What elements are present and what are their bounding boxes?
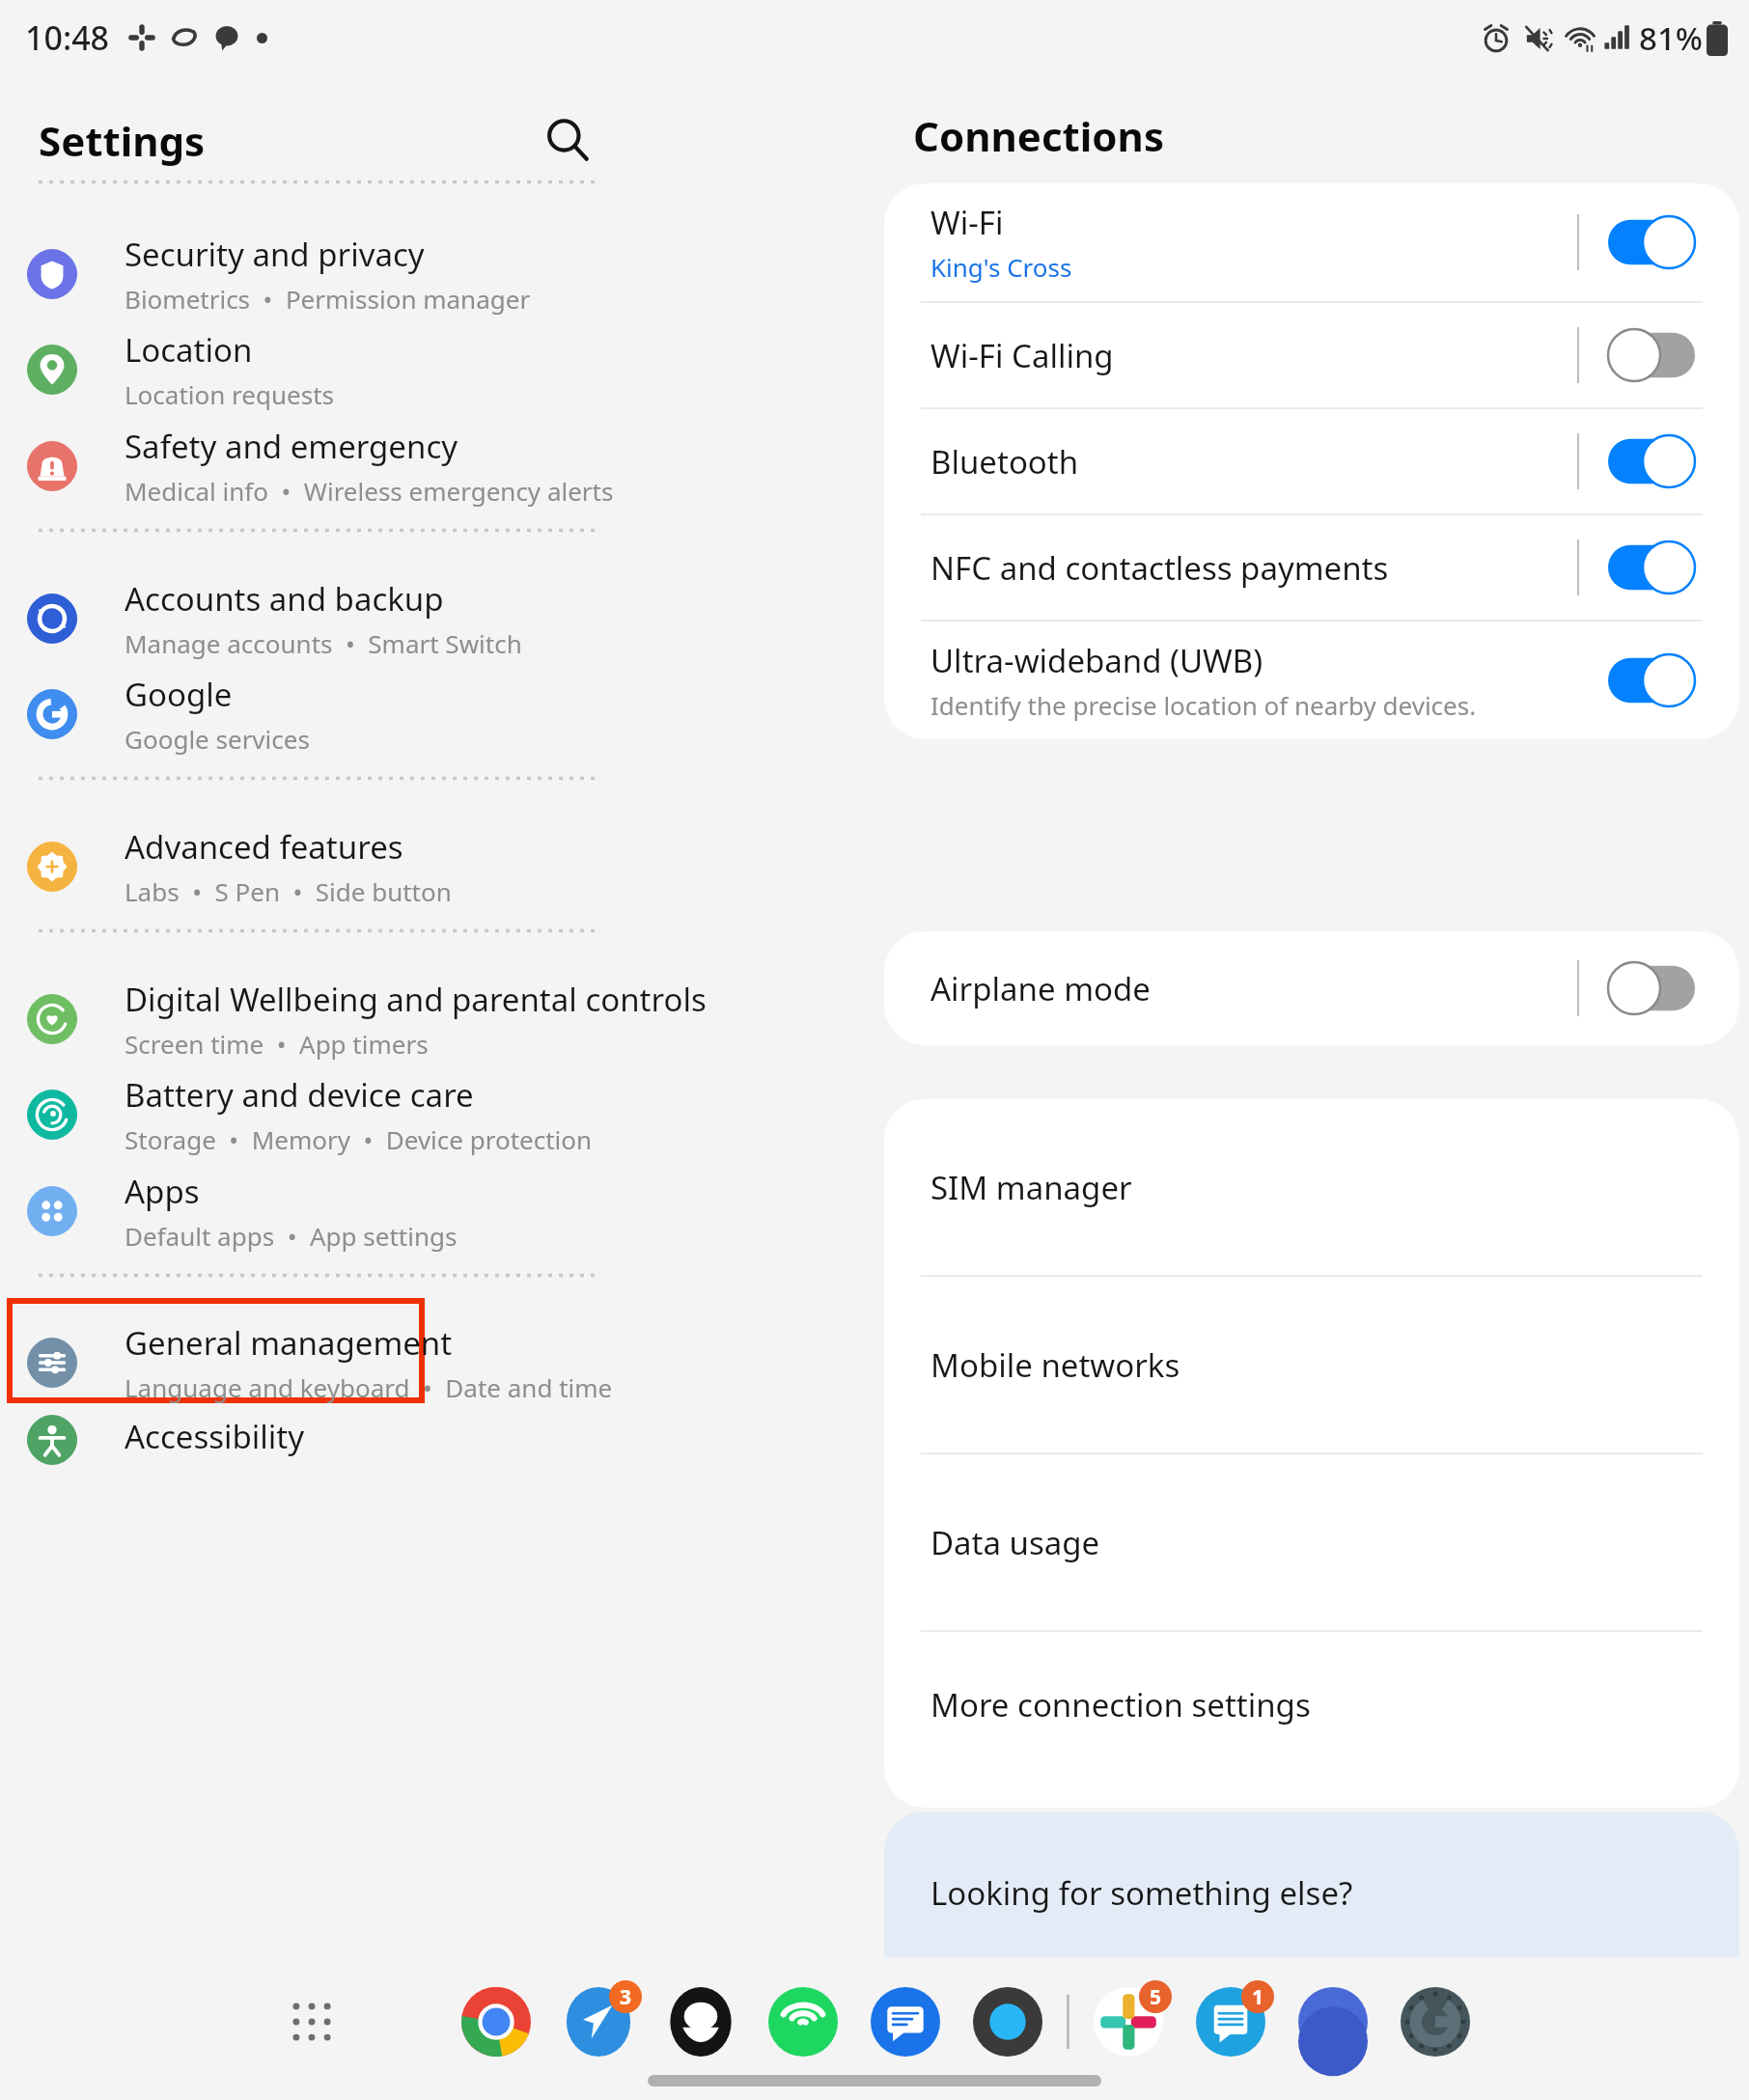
button[interactable]: Ultra-wideband (UWB) bbox=[884, 622, 1739, 739]
button[interactable]: SIM manager bbox=[884, 1099, 1739, 1275]
staticText: Manage accounts • Smart Switch bbox=[125, 626, 522, 660]
staticText: Battery and device care bbox=[125, 1073, 474, 1117]
staticText: 3 bbox=[620, 1983, 632, 2011]
staticText: Medical info • Wireless emergency alerts bbox=[125, 474, 614, 508]
button[interactable]: Google bbox=[0, 670, 874, 759]
button[interactable]: Messages bbox=[866, 1982, 945, 2061]
button[interactable]: Outlook bbox=[1293, 1982, 1373, 2061]
staticText: Storage • Memory • Device protection bbox=[125, 1122, 593, 1156]
button[interactable]: NFC and contactless payments bbox=[884, 515, 1739, 620]
staticText: Biometrics • Permission manager bbox=[125, 282, 531, 316]
staticText: King's Cross bbox=[930, 250, 1072, 284]
staticText: 10:48 bbox=[25, 15, 110, 60]
button[interactable]: Spark bbox=[559, 1982, 638, 2061]
staticText: Connections bbox=[913, 108, 1164, 163]
staticText: Advanced features bbox=[125, 825, 403, 869]
button[interactable]: More connection settings bbox=[884, 1645, 1739, 1763]
button[interactable]: App drawer bbox=[275, 1985, 348, 2059]
staticText: Accounts and backup bbox=[125, 577, 444, 621]
staticText: SIM manager bbox=[930, 1166, 1132, 1209]
staticText: Location bbox=[125, 328, 253, 372]
staticText: Ultra-wideband (UWB) bbox=[930, 639, 1263, 682]
button[interactable]: Wi-Fi bbox=[884, 183, 1739, 301]
staticText: Language and keyboard • Date and time bbox=[125, 1370, 613, 1404]
button[interactable]: Slack bbox=[1089, 1982, 1168, 2061]
button[interactable]: Digital Wellbeing and parental controls bbox=[0, 975, 874, 1064]
staticText: NFC and contactless payments bbox=[930, 546, 1389, 590]
staticText: Mobile Hotspot and Tethering bbox=[930, 1699, 1378, 1742]
staticText: Default apps • App settings bbox=[125, 1219, 458, 1253]
button[interactable]: Location bbox=[0, 325, 874, 414]
staticText: Mobile networks bbox=[930, 1343, 1180, 1387]
button[interactable]: Wi-Fi toggle bbox=[1608, 216, 1695, 268]
staticText: Wi-Fi Calling bbox=[930, 334, 1114, 377]
staticText: Safety and emergency bbox=[125, 425, 458, 468]
button[interactable]: Mobile networks bbox=[884, 1277, 1739, 1452]
button[interactable]: Security and privacy bbox=[0, 230, 874, 318]
staticText: Bluetooth bbox=[930, 440, 1079, 484]
button[interactable]: Accounts and backup bbox=[0, 574, 874, 663]
button[interactable]: NFC and contactless payments toggle bbox=[1608, 541, 1695, 594]
button[interactable]: Secure Wi-Fi bbox=[930, 2021, 1105, 2061]
button[interactable]: Chat bbox=[1191, 1982, 1270, 2061]
staticText: Accessibility bbox=[125, 1415, 305, 1458]
button[interactable]: General management bbox=[0, 1318, 874, 1407]
button[interactable]: Advanced features bbox=[0, 822, 874, 911]
staticText: Identify the precise location of nearby … bbox=[930, 688, 1477, 722]
staticText: Secure Wi-Fi bbox=[930, 2021, 1105, 2061]
staticText: Looking for something else? bbox=[930, 1871, 1353, 1915]
staticText: Samsung Cloud bbox=[930, 1951, 1154, 1992]
button[interactable]: Airplane mode bbox=[884, 931, 1739, 1045]
staticText: Airplane mode bbox=[930, 967, 1151, 1010]
button[interactable]: Camera bbox=[968, 1982, 1047, 2061]
staticText: 5 bbox=[1150, 1983, 1162, 2011]
button[interactable]: Samsung Cloud bbox=[930, 1951, 1154, 1992]
staticText: Labs • S Pen • Side button bbox=[125, 874, 452, 908]
button[interactable]: Apps bbox=[0, 1167, 874, 1256]
staticText: Wi-Fi bbox=[930, 201, 1004, 244]
staticText: Google services bbox=[125, 722, 310, 756]
staticText: 1 bbox=[1252, 1983, 1264, 2011]
button[interactable]: Bluetooth toggle bbox=[1608, 435, 1695, 487]
staticText: Data usage bbox=[930, 1521, 1100, 1564]
staticText: Apps bbox=[125, 1170, 200, 1213]
staticText: Digital Wellbeing and parental controls bbox=[125, 978, 707, 1021]
button[interactable]: Data usage bbox=[884, 1454, 1739, 1630]
button[interactable]: Chrome bbox=[457, 1982, 536, 2061]
button[interactable]: Safety and emergency bbox=[0, 422, 874, 511]
staticText: More connection settings bbox=[930, 1683, 1311, 1727]
button[interactable]: Battery and device care bbox=[0, 1070, 874, 1159]
button[interactable]: Mobile Hotspot and Tethering bbox=[884, 1632, 1739, 1808]
staticText: Location requests bbox=[125, 377, 334, 411]
staticText: 81% bbox=[1639, 16, 1703, 60]
button[interactable]: Wi-Fi Calling toggle bbox=[1608, 329, 1695, 381]
button[interactable]: Spotify bbox=[763, 1982, 843, 2061]
staticText: Settings bbox=[39, 113, 206, 168]
button[interactable]: Search bbox=[529, 101, 606, 179]
staticText: Google bbox=[125, 673, 233, 716]
button[interactable]: Ultra-wideband (UWB) toggle bbox=[1608, 654, 1695, 706]
button[interactable]: Dark app bbox=[661, 1982, 740, 2061]
button[interactable]: Wi-Fi Calling bbox=[884, 303, 1739, 407]
button[interactable]: Airplane mode toggle bbox=[1608, 962, 1695, 1014]
staticText: General management bbox=[125, 1321, 453, 1365]
button[interactable]: Authenticator bbox=[1396, 1982, 1475, 2061]
staticText: Security and privacy bbox=[125, 233, 425, 276]
button[interactable]: Bluetooth bbox=[884, 409, 1739, 513]
staticText: Screen time • App timers bbox=[125, 1027, 429, 1061]
